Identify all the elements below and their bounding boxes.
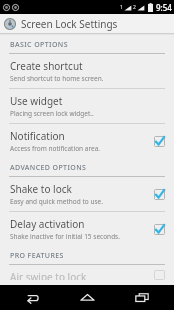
button[interactable]: Use widget [0, 89, 174, 123]
button: Air swipe to lock [0, 265, 174, 285]
staticText: BASIC OPTIONS [10, 40, 68, 50]
staticText: Easy and quick method to use. [10, 197, 103, 206]
staticText: 2 [133, 4, 136, 11]
staticText: Create shortcut [10, 59, 83, 73]
button[interactable]: Checked [153, 188, 166, 201]
staticText: 9:54 [156, 2, 172, 13]
button[interactable]: Recent apps [119, 285, 165, 310]
button[interactable]: Create shortcut [0, 54, 174, 88]
staticText: Notification [10, 129, 65, 143]
staticText: Delay activation [10, 217, 85, 231]
staticText: Placing screen lock widget.. [10, 109, 94, 118]
button[interactable]: Screen Lock Settings [0, 14, 174, 33]
button[interactable]: Shake to lock [0, 177, 174, 211]
button[interactable]: Back [9, 285, 55, 310]
button[interactable]: Checked [153, 223, 166, 236]
button[interactable]: Checked [153, 135, 166, 148]
staticText: Shake to lock [10, 182, 72, 196]
staticText: 1 [120, 4, 123, 11]
button[interactable]: Delay activation [0, 212, 174, 246]
staticText: Use widget [10, 94, 63, 108]
staticText: Air swipe to lock [10, 270, 87, 280]
staticText: ADVANCED OPTIONS [10, 163, 87, 173]
button[interactable]: Home [64, 285, 110, 310]
staticText: Send shortcut to home screen. [10, 74, 104, 83]
staticText: PRO FEATURES [10, 251, 64, 261]
staticText: Access from notification area. [10, 144, 101, 153]
staticText: Shake inactive for initial 15 seconds. [10, 232, 120, 241]
button: Unchecked [153, 270, 166, 280]
button[interactable]: Notification [0, 124, 174, 158]
staticText: Screen Lock Settings [21, 17, 118, 31]
